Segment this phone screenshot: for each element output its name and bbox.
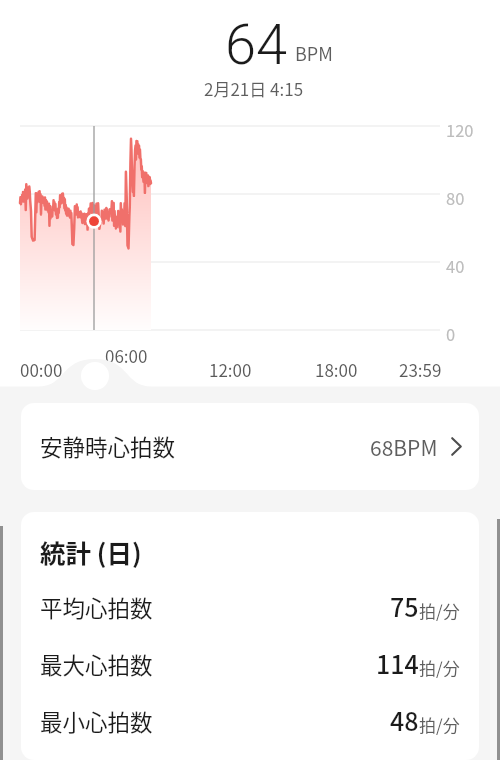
staticText: 06:00	[105, 343, 148, 368]
staticText: 拍/分	[419, 655, 460, 680]
staticText: BPM	[295, 40, 333, 66]
staticText: 120	[446, 118, 474, 142]
button[interactable]: 安静時心拍数	[21, 403, 479, 490]
staticText: 平均心拍数	[40, 591, 153, 624]
staticText: 40	[446, 254, 465, 278]
staticText: 安静時心拍数	[40, 430, 176, 463]
staticText: 最大心拍数	[40, 648, 153, 681]
staticText: 114	[376, 645, 419, 681]
staticText: 80	[446, 186, 465, 210]
staticText: 18:00	[315, 357, 358, 382]
staticText: 48	[390, 702, 419, 738]
staticText: 統計 (日)	[40, 533, 142, 570]
staticText: 23:59	[399, 357, 442, 382]
staticText: 0	[446, 322, 456, 346]
staticText: 最小心拍数	[40, 705, 153, 738]
staticText: 75	[390, 588, 419, 624]
staticText: 68BPM	[370, 432, 438, 462]
button[interactable]: Time scrubber handle	[81, 362, 109, 390]
staticText: 00:00	[20, 357, 63, 382]
staticText: 12:00	[209, 357, 252, 382]
staticText: 64	[225, 12, 288, 78]
staticText: 2月21日 4:15	[204, 76, 304, 101]
staticText: 拍/分	[419, 712, 460, 737]
staticText: 拍/分	[419, 598, 460, 623]
